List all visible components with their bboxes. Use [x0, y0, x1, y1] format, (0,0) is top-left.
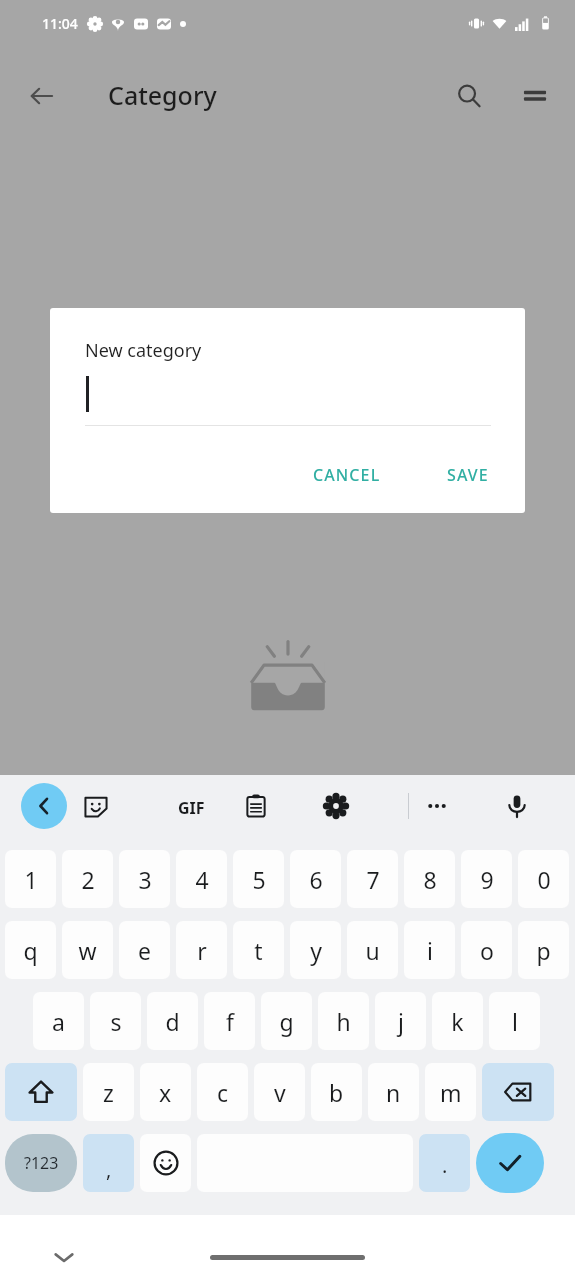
staticText: f: [226, 1006, 234, 1037]
button[interactable]: b: [311, 1063, 362, 1121]
button[interactable]: h: [318, 992, 369, 1050]
staticText: r: [197, 935, 207, 966]
button[interactable]: v: [254, 1063, 305, 1121]
button[interactable]: i: [404, 921, 455, 979]
staticText: Category: [108, 78, 217, 112]
staticText: 4: [195, 864, 209, 895]
button[interactable]: q: [5, 921, 56, 979]
button[interactable]: y: [290, 921, 341, 979]
button[interactable]: o: [461, 921, 512, 979]
button[interactable]: 6: [290, 850, 341, 908]
staticText: 9: [480, 864, 494, 895]
button[interactable]: Emoji: [140, 1134, 191, 1192]
staticText: e: [138, 935, 151, 966]
staticText: b: [329, 1077, 344, 1108]
button[interactable]: e: [119, 921, 170, 979]
staticText: 7: [366, 864, 380, 895]
button[interactable]: p: [518, 921, 569, 979]
button[interactable]: z: [83, 1063, 134, 1121]
staticText: k: [451, 1006, 464, 1037]
button[interactable]: Backspace: [482, 1063, 554, 1121]
button[interactable]: c: [197, 1063, 248, 1121]
button[interactable]: 2: [62, 850, 113, 908]
staticText: SAVE: [447, 464, 489, 486]
button[interactable]: d: [147, 992, 198, 1050]
staticText: s: [110, 1006, 122, 1037]
button[interactable]: s: [90, 992, 141, 1050]
staticText: y: [310, 935, 322, 966]
staticText: New category: [85, 338, 202, 363]
button[interactable]: k: [432, 992, 483, 1050]
button[interactable]: Search: [445, 72, 493, 120]
staticText: ?123: [24, 1152, 59, 1174]
staticText: m: [440, 1077, 462, 1108]
staticText: CANCEL: [313, 464, 381, 486]
staticText: 5: [252, 864, 266, 895]
button[interactable]: Shift: [5, 1063, 77, 1121]
button[interactable]: Clipboard: [234, 784, 278, 828]
staticText: x: [159, 1077, 172, 1108]
staticText: v: [274, 1077, 286, 1108]
staticText: p: [536, 935, 551, 966]
button[interactable]: n: [368, 1063, 419, 1121]
button[interactable]: x: [140, 1063, 191, 1121]
staticText: GIF: [178, 797, 205, 819]
button[interactable]: Enter: [476, 1133, 544, 1193]
button[interactable]: w: [62, 921, 113, 979]
staticText: i: [427, 935, 433, 966]
staticText: c: [217, 1077, 229, 1108]
button[interactable]: 7: [347, 850, 398, 908]
button[interactable]: 1: [5, 850, 56, 908]
button[interactable]: Stickers: [74, 784, 118, 828]
button[interactable]: j: [375, 992, 426, 1050]
staticText: ,: [106, 1156, 112, 1183]
staticText: t: [254, 935, 263, 966]
button[interactable]: 8: [404, 850, 455, 908]
button[interactable]: Hide keyboard: [42, 1235, 86, 1279]
button[interactable]: Back: [21, 783, 67, 829]
staticText: l: [512, 1006, 518, 1037]
button[interactable]: Sort: [511, 72, 559, 120]
button[interactable]: g: [261, 992, 312, 1050]
staticText: z: [103, 1077, 114, 1108]
button[interactable]: CANCEL: [305, 456, 389, 494]
button[interactable]: .: [419, 1134, 470, 1192]
button[interactable]: 5: [233, 850, 284, 908]
staticText: 1: [24, 864, 38, 895]
staticText: 6: [309, 864, 323, 895]
button[interactable]: 3: [119, 850, 170, 908]
button[interactable]: More options: [415, 784, 459, 828]
staticText: 11:04: [42, 14, 78, 33]
button[interactable]: 4: [176, 850, 227, 908]
button[interactable]: f: [204, 992, 255, 1050]
button[interactable]: Settings: [314, 784, 358, 828]
button[interactable]: m: [425, 1063, 476, 1121]
staticText: 2: [81, 864, 95, 895]
staticText: q: [23, 935, 38, 966]
staticText: d: [165, 1006, 180, 1037]
staticText: h: [336, 1006, 351, 1037]
staticText: n: [386, 1077, 401, 1108]
staticText: 8: [423, 864, 437, 895]
staticText: w: [78, 935, 97, 966]
button[interactable]: ,: [83, 1134, 134, 1192]
staticText: 0: [537, 864, 551, 895]
button[interactable]: r: [176, 921, 227, 979]
staticText: g: [279, 1006, 294, 1037]
button[interactable]: a: [33, 992, 84, 1050]
button[interactable]: l: [489, 992, 540, 1050]
button[interactable]: 0: [518, 850, 569, 908]
button[interactable]: GIF: [154, 784, 198, 828]
staticText: .: [442, 1152, 448, 1179]
staticText: u: [365, 935, 380, 966]
button[interactable]: ?123: [5, 1134, 77, 1192]
button[interactable]: Back: [18, 72, 66, 120]
button[interactable]: SAVE: [439, 456, 497, 494]
button[interactable]: 9: [461, 850, 512, 908]
button[interactable]: t: [233, 921, 284, 979]
staticText: j: [398, 1006, 404, 1037]
staticText: a: [52, 1006, 65, 1037]
button[interactable]: Voice input: [495, 784, 539, 828]
button[interactable]: u: [347, 921, 398, 979]
